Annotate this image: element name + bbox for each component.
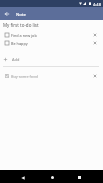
button[interactable]: Delete Buy some food [91,72,99,80]
staticText: Add [12,57,20,62]
button[interactable]: Delete Find a new job [91,31,99,39]
staticText: 4:48 [93,2,101,7]
button[interactable]: Home [44,171,60,183]
button[interactable]: Buy some food [0,72,103,80]
staticText: Note [16,11,26,17]
button[interactable]: Add [0,55,103,63]
button[interactable]: Be happy [0,39,103,47]
button[interactable]: Recents [71,171,87,183]
button[interactable]: Find a new job [0,31,103,39]
button[interactable]: Delete Be happy [91,39,99,47]
staticText: Buy some food [11,74,91,79]
button[interactable]: Back [2,9,11,18]
staticText: Find a new job [11,33,91,38]
staticText: My first to-do list [3,22,39,28]
button[interactable]: Back [15,171,31,183]
staticText: Be happy [11,41,91,46]
